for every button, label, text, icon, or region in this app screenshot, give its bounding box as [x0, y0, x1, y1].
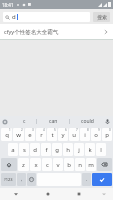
button[interactable]: d [30, 143, 40, 156]
staticText: c [23, 118, 26, 125]
staticText: m [88, 161, 94, 169]
staticText: cfyy个性签名大全霸气 [4, 28, 103, 36]
button[interactable]: s [19, 143, 29, 156]
staticText: 9 [98, 128, 100, 132]
button[interactable]: Backspace [97, 158, 112, 171]
button[interactable]: t [47, 128, 57, 141]
staticText: 6 [65, 128, 67, 132]
staticText: ?123 [4, 177, 13, 182]
staticText: 18:41 [2, 2, 14, 8]
staticText: b [67, 161, 71, 169]
button[interactable]: could [70, 118, 104, 125]
button[interactable]: Hide keyboard [94, 188, 113, 200]
staticText: v [56, 161, 60, 169]
button[interactable]: Enter [92, 173, 112, 186]
button[interactable]: x [30, 158, 41, 171]
button[interactable]: r [36, 128, 46, 141]
staticText: d [33, 146, 37, 154]
button[interactable]: ?123 [1, 173, 16, 186]
staticText: d [12, 13, 16, 21]
staticText: y [61, 131, 65, 139]
button[interactable]: c [42, 158, 52, 171]
staticText: a [11, 146, 15, 154]
button[interactable]: Search [3, 12, 90, 22]
staticText: could [81, 118, 94, 125]
button[interactable]: k [85, 143, 95, 156]
staticText: i [84, 131, 86, 139]
staticText: l [100, 146, 102, 154]
staticText: p [105, 131, 109, 139]
button[interactable]: n [75, 158, 85, 171]
button[interactable]: Shift [1, 158, 17, 171]
staticText: 2 [21, 128, 23, 132]
button[interactable]: c [12, 118, 36, 125]
staticText: 5 [54, 128, 56, 132]
button[interactable]: Google [2, 119, 8, 125]
staticText: x [34, 161, 38, 169]
staticText: o [94, 131, 98, 139]
staticText: k [88, 146, 92, 154]
button[interactable]: w [13, 128, 24, 141]
other: Fill search [103, 29, 109, 35]
staticText: 3 [32, 128, 34, 132]
staticText: r [40, 131, 43, 139]
button[interactable]: z [18, 158, 29, 171]
button[interactable]: Voice input [104, 118, 111, 125]
staticText: g [55, 146, 59, 154]
staticText: 7 [76, 128, 78, 132]
button[interactable]: p [102, 128, 112, 141]
button[interactable]: f [41, 143, 51, 156]
button[interactable]: b [64, 158, 74, 171]
button[interactable]: Home [32, 188, 63, 200]
button[interactable]: Emoji [27, 173, 36, 186]
staticText: e [28, 131, 32, 139]
button[interactable]: g [52, 143, 62, 156]
button[interactable]: m [86, 158, 96, 171]
staticText: 4 [43, 128, 45, 132]
button[interactable]: 搜索 [93, 12, 110, 22]
staticText: z [22, 161, 25, 169]
button[interactable]: a [8, 143, 18, 156]
button[interactable]: Period [82, 173, 91, 186]
staticText: h [66, 146, 70, 154]
button[interactable]: Comma [17, 173, 26, 186]
button[interactable]: e [25, 128, 35, 141]
staticText: 1 [9, 128, 11, 132]
button[interactable]: y [58, 128, 68, 141]
staticText: 搜索 [97, 14, 107, 20]
button[interactable]: i [80, 128, 90, 141]
staticText: 0 [109, 128, 111, 132]
button[interactable]: Back [0, 188, 32, 200]
button[interactable]: u [69, 128, 79, 141]
staticText: can [49, 118, 58, 125]
staticText: f [45, 146, 48, 154]
staticText: c [46, 161, 49, 169]
button[interactable]: can [37, 118, 69, 125]
staticText: w [16, 131, 21, 139]
staticText: q [5, 131, 9, 139]
button[interactable]: cfyy个性签名大全霸气 [0, 24, 113, 39]
button[interactable]: l [96, 143, 106, 156]
button[interactable]: Recents [63, 188, 94, 200]
button[interactable]: j [74, 143, 84, 156]
button[interactable]: q [1, 128, 12, 141]
button[interactable]: h [63, 143, 73, 156]
staticText: j [78, 146, 80, 154]
staticText: . [86, 176, 88, 183]
other: Search [5, 15, 10, 20]
button[interactable]: v [53, 158, 63, 171]
staticText: , [21, 176, 23, 183]
button[interactable]: o [91, 128, 101, 141]
staticText: 8 [87, 128, 89, 132]
staticText: u [72, 131, 76, 139]
staticText: s [23, 146, 26, 154]
staticText: t [51, 131, 54, 139]
staticText: n [78, 161, 82, 169]
